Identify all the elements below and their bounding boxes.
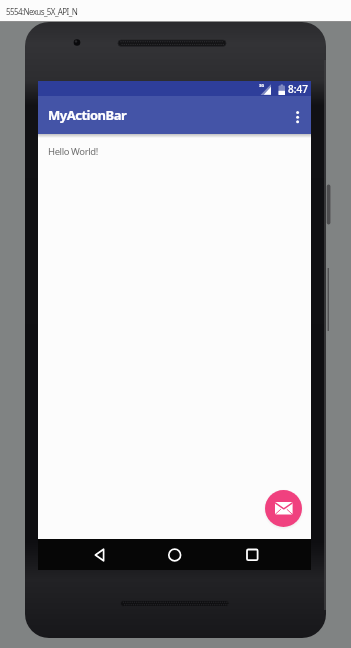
button[interactable] [144, 539, 204, 570]
button[interactable] [69, 539, 129, 570]
staticText: 5554:Nexus_5X_API_N [6, 6, 78, 17]
staticText: MyActionBar [48, 106, 127, 124]
button[interactable] [222, 539, 282, 570]
staticText: Hello World! [48, 145, 98, 158]
staticText: 8:47 [288, 82, 308, 96]
staticText: 3G [259, 83, 265, 88]
button[interactable] [285, 96, 311, 134]
button[interactable] [265, 490, 302, 527]
